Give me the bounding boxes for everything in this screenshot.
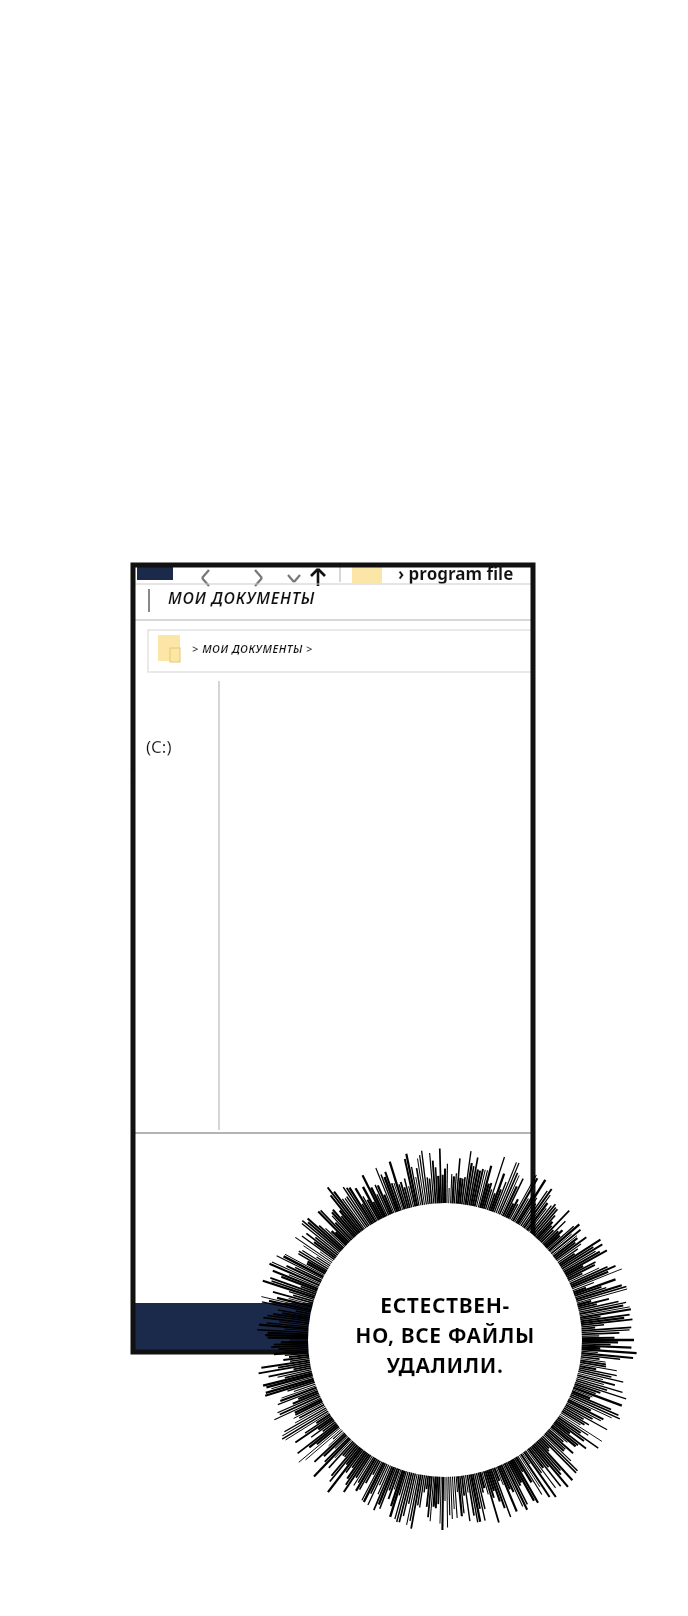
button[interactable]: Comic panel: file explorer window (0, 0, 688, 1616)
